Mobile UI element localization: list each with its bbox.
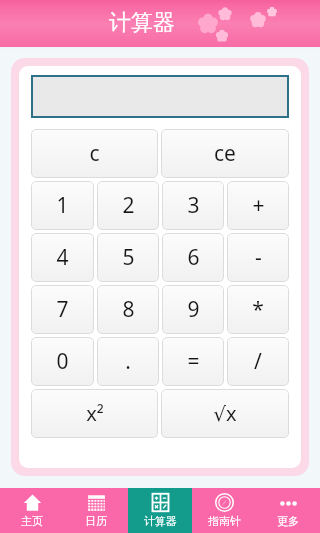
button[interactable]: 5 <box>97 233 159 282</box>
staticText: = <box>187 347 200 376</box>
button[interactable]: / <box>227 337 289 386</box>
staticText: 指南针 <box>208 514 241 528</box>
staticText: 7 <box>56 295 69 324</box>
staticText: 计算器 <box>144 514 177 528</box>
button[interactable]: 6 <box>162 233 224 282</box>
button[interactable]: - <box>227 233 289 282</box>
button[interactable]: 9 <box>162 285 224 334</box>
staticText: 6 <box>187 243 200 272</box>
staticText: . <box>125 347 131 376</box>
button[interactable]: . <box>97 337 159 386</box>
staticText: 2 <box>122 191 135 220</box>
button[interactable]: * <box>227 285 289 334</box>
button[interactable]: 4 <box>31 233 94 282</box>
staticText: √x <box>213 400 237 427</box>
staticText: 0 <box>56 347 69 376</box>
staticText: 1 <box>56 191 69 220</box>
staticText: 8 <box>122 295 135 324</box>
staticText: 9 <box>187 295 200 324</box>
button[interactable]: √x <box>161 389 289 438</box>
button[interactable]: + <box>227 181 289 230</box>
button[interactable]: c <box>31 129 158 178</box>
staticText: - <box>255 243 262 272</box>
button[interactable]: 日历 <box>64 488 128 533</box>
button[interactable]: 8 <box>97 285 159 334</box>
button[interactable]: 指南针 <box>192 488 256 533</box>
staticText: * <box>252 295 264 324</box>
staticText: 5 <box>122 243 135 272</box>
button[interactable]: 主页 <box>0 488 64 533</box>
staticText: 计算器 <box>109 9 175 37</box>
button[interactable]: 3 <box>162 181 224 230</box>
button[interactable]: = <box>162 337 224 386</box>
staticText: x² <box>86 400 104 427</box>
button[interactable]: 计算器 <box>128 488 192 533</box>
staticText: 日历 <box>85 514 107 528</box>
button[interactable]: 7 <box>31 285 94 334</box>
button[interactable]: 0 <box>31 337 94 386</box>
staticText: ce <box>214 139 236 168</box>
button[interactable]: 2 <box>97 181 159 230</box>
staticText: 主页 <box>21 514 43 528</box>
staticText: 3 <box>187 191 200 220</box>
button[interactable]: x² <box>31 389 158 438</box>
staticText: 4 <box>56 243 69 272</box>
staticText: c <box>89 139 100 168</box>
staticText: + <box>252 191 265 220</box>
button[interactable]: ce <box>161 129 289 178</box>
staticText: 更多 <box>277 514 299 528</box>
button[interactable]: 1 <box>31 181 94 230</box>
staticText: / <box>254 347 262 376</box>
button[interactable]: 更多 <box>256 488 320 533</box>
